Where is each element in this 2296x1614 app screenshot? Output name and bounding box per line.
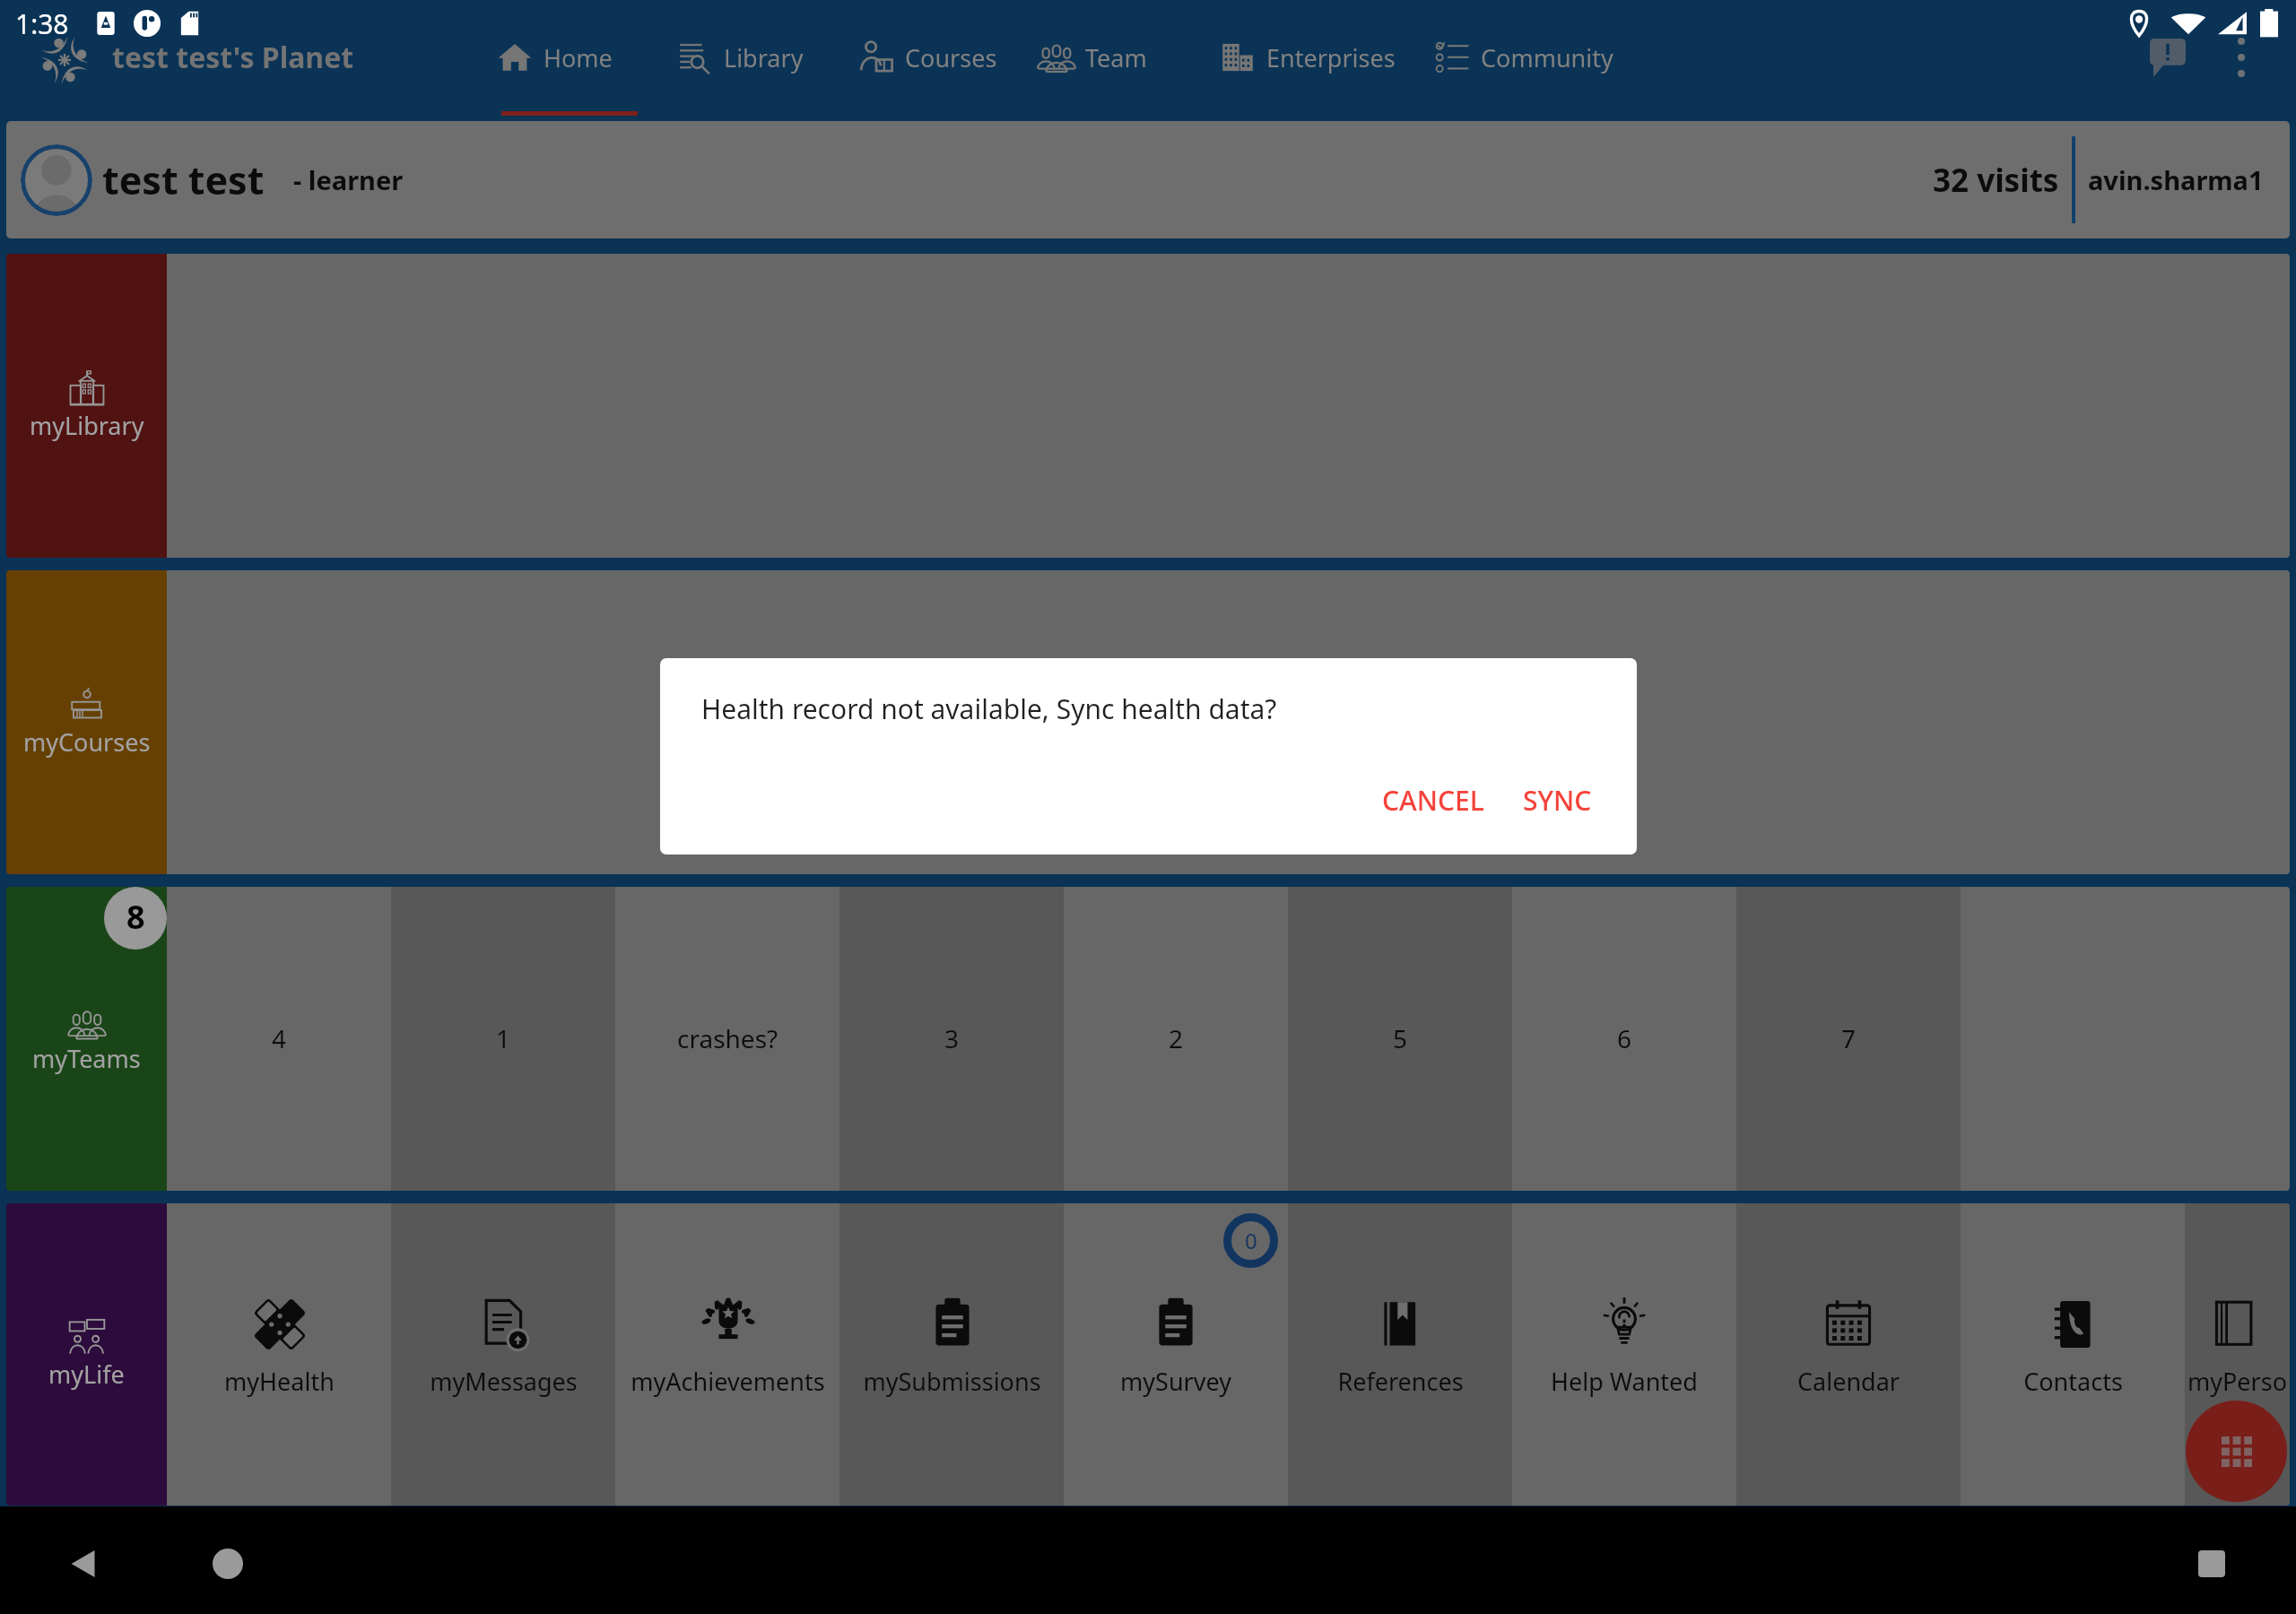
staticText: myLibrary [30, 409, 144, 442]
staticText: Enterprises [1266, 41, 1396, 74]
button[interactable]: SYNC [1505, 771, 1610, 829]
button[interactable]: Feedback [2135, 27, 2201, 88]
button[interactable]: mySurvey [1064, 1203, 1288, 1506]
button[interactable]: myPersonals [2185, 1203, 2290, 1506]
staticText: 7 [1841, 1021, 1857, 1055]
staticText: 2 [1169, 1021, 1184, 1055]
staticText: test test [102, 153, 265, 206]
staticText: myTeams [32, 1042, 141, 1075]
button[interactable]: myTeams [6, 887, 167, 1191]
staticText: myAchievements [631, 1365, 825, 1398]
staticText: CANCEL [1382, 782, 1484, 819]
staticText: 1:38 [15, 5, 69, 42]
button[interactable]: Calendar [1736, 1203, 1961, 1506]
staticText: 32 visits [1933, 159, 2059, 202]
button[interactable]: Help Wanted [1512, 1203, 1736, 1506]
button[interactable]: References [1288, 1203, 1512, 1506]
button[interactable]: Home [496, 27, 613, 88]
staticText: 4 [272, 1021, 287, 1055]
staticText: 8 [126, 895, 145, 939]
staticText: SYNC [1523, 782, 1592, 819]
button[interactable]: CANCEL [1364, 771, 1502, 829]
staticText: crashes? [677, 1021, 778, 1055]
staticText: myCourses [23, 725, 151, 759]
button[interactable]: Contacts [1961, 1203, 2185, 1506]
staticText: Library [724, 41, 804, 74]
button[interactable]: More options [2210, 27, 2273, 88]
staticText: References [1337, 1365, 1464, 1398]
staticText: myPersonals [2185, 1365, 2290, 1398]
staticText: myHealth [224, 1365, 335, 1398]
staticText: Contacts [2023, 1365, 2123, 1398]
staticText: Help Wanted [1551, 1365, 1698, 1398]
button[interactable]: myLibrary [6, 254, 167, 558]
staticText: mySubmissions [863, 1365, 1041, 1398]
staticText: mySurvey [1120, 1365, 1231, 1398]
button[interactable]: Home [199, 1535, 257, 1592]
staticText: Courses [905, 41, 997, 74]
staticText: 5 [1393, 1021, 1408, 1055]
staticText: 1 [496, 1021, 511, 1055]
button[interactable]: Enterprises [1219, 27, 1396, 88]
button[interactable]: Community [1433, 27, 1613, 88]
button[interactable]: myMessages [391, 1203, 615, 1506]
staticText: 6 [1617, 1021, 1632, 1055]
staticText: myLife [48, 1358, 125, 1391]
button[interactable]: mySubmissions [839, 1203, 1064, 1506]
button[interactable]: Team [1038, 27, 1147, 88]
staticText: - learner [293, 162, 404, 197]
staticText: myMessages [430, 1365, 578, 1398]
staticText: Calendar [1797, 1365, 1900, 1398]
staticText: 3 [944, 1021, 960, 1055]
staticText: Community [1481, 41, 1613, 74]
staticText: test test's Planet [112, 38, 354, 77]
button[interactable]: crashes? [615, 887, 839, 1191]
staticText: Team [1085, 41, 1147, 74]
button[interactable]: myLife [6, 1203, 167, 1506]
staticText: 0 [1245, 1226, 1257, 1255]
button[interactable]: Courses [857, 27, 997, 88]
button[interactable]: Back [56, 1535, 113, 1592]
button[interactable]: Apps [2186, 1401, 2287, 1502]
button[interactable]: myAchievements [615, 1203, 839, 1506]
button[interactable]: myCourses [6, 570, 167, 874]
staticText: Health record not available, Sync health… [701, 690, 1277, 727]
staticText: avin.sharma1 [2088, 162, 2264, 197]
button[interactable]: Recent apps [2183, 1535, 2240, 1592]
staticText: Home [544, 41, 613, 74]
button[interactable]: myHealth [167, 1203, 391, 1506]
button[interactable]: Library [676, 27, 804, 88]
button[interactable]: test test [6, 121, 2290, 239]
